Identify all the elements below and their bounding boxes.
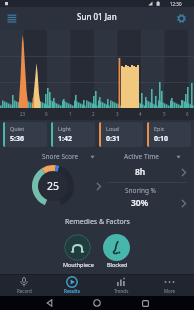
staticText: Remedies & Factors: [65, 217, 130, 227]
button[interactable]: Quiet: [3, 122, 47, 147]
staticText: Light: [58, 125, 72, 132]
staticText: 8h: [135, 166, 146, 178]
button[interactable]: [100, 196, 190, 211]
button[interactable]: Results: [48, 274, 97, 296]
staticText: Active Time: [124, 152, 159, 161]
button[interactable]: [133, 296, 157, 310]
button[interactable]: [3, 10, 21, 26]
button[interactable]: [85, 296, 109, 310]
button[interactable]: Loud: [99, 122, 143, 147]
button[interactable]: [103, 234, 130, 261]
staticText: 2: [92, 111, 95, 117]
staticText: 23: [20, 111, 26, 117]
button[interactable]: Light: [51, 122, 95, 147]
button[interactable]: 25: [31, 164, 75, 208]
staticText: 30%: [131, 197, 149, 209]
staticText: 5: [163, 111, 166, 117]
staticText: Loud: [106, 125, 119, 132]
button[interactable]: Record: [0, 274, 48, 296]
button[interactable]: [172, 10, 190, 26]
staticText: Epic: [154, 125, 165, 132]
staticText: Results: [64, 288, 80, 294]
staticText: 0: [45, 111, 48, 117]
staticText: 1:42: [58, 134, 72, 144]
staticText: Blocked: [107, 261, 128, 268]
button[interactable]: [100, 165, 190, 180]
staticText: 1: [69, 111, 72, 117]
staticText: Snoring %: [125, 186, 156, 195]
staticText: 5:36: [10, 134, 24, 144]
staticText: Sun 01 Jan: [77, 11, 117, 22]
staticText: Trends: [114, 288, 129, 294]
button[interactable]: Trends: [97, 274, 145, 296]
staticText: 0:31: [106, 134, 120, 144]
staticText: More: [164, 288, 176, 294]
staticText: Quiet: [10, 125, 25, 132]
staticText: 25: [47, 179, 60, 193]
staticText: Snore Score: [42, 152, 79, 161]
staticText: 0:10: [154, 134, 168, 144]
staticText: 12:30: [170, 1, 182, 7]
button[interactable]: Epic: [147, 122, 191, 147]
button[interactable]: [37, 296, 61, 310]
button[interactable]: [64, 234, 91, 261]
button[interactable]: More: [145, 274, 194, 296]
staticText: 3: [116, 111, 119, 117]
staticText: 4: [139, 111, 142, 117]
staticText: Record: [17, 288, 32, 294]
staticText: Mouthpiece: [63, 261, 94, 268]
staticText: 6: [186, 111, 189, 117]
